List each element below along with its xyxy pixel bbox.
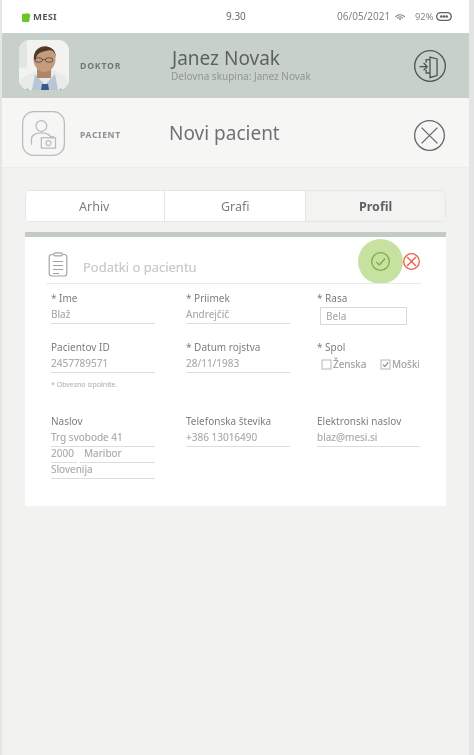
staticText: Podatki o pacientu bbox=[83, 258, 197, 276]
button[interactable]: +386 13016490 bbox=[186, 428, 290, 447]
staticText: 2457789571 bbox=[51, 356, 109, 370]
button[interactable]: Moški bbox=[381, 357, 420, 371]
staticText: PACIENT bbox=[80, 129, 121, 141]
staticText: Profil bbox=[359, 198, 393, 215]
button[interactable]: Slovenija bbox=[51, 460, 155, 479]
staticText: Pacientov ID bbox=[51, 340, 110, 354]
button[interactable]: Maribor bbox=[80, 444, 155, 463]
staticText: Trg svobode 41 bbox=[51, 430, 123, 444]
staticText: Bela bbox=[326, 309, 347, 323]
staticText: Telefonska števika bbox=[186, 414, 272, 428]
staticText: Janez Novak bbox=[172, 45, 280, 71]
staticText: Novi pacient bbox=[169, 120, 280, 146]
staticText: Grafi bbox=[221, 198, 250, 215]
button[interactable]: Preklici bbox=[403, 253, 420, 270]
staticText: Arhiv bbox=[79, 198, 110, 215]
button[interactable]: Arhiv bbox=[25, 190, 164, 222]
staticText: Maribor bbox=[84, 446, 122, 460]
button[interactable]: blaz@mesi.si bbox=[317, 428, 420, 447]
staticText: Ženska bbox=[333, 357, 367, 371]
staticText: * Priimek bbox=[186, 291, 230, 305]
button[interactable]: Trg svobode 41 bbox=[51, 428, 155, 447]
staticText: 06/05/2021 bbox=[337, 9, 391, 23]
button[interactable]: Potrdi bbox=[371, 252, 390, 271]
staticText: blaz@mesi.si bbox=[317, 430, 378, 444]
staticText: Slovenija bbox=[51, 462, 93, 476]
staticText: * Datum rojstva bbox=[186, 340, 261, 354]
staticText: Delovna skupina: Janez Novak bbox=[171, 69, 311, 83]
button[interactable]: Ženska bbox=[322, 357, 367, 371]
staticText: 9.30 bbox=[226, 9, 246, 23]
button[interactable]: Bela bbox=[320, 307, 407, 325]
staticText: * Ime bbox=[51, 291, 78, 305]
button[interactable]: Profil bbox=[306, 190, 446, 222]
button[interactable]: Andrejčič bbox=[186, 305, 290, 324]
staticText: 92% bbox=[415, 10, 434, 23]
button[interactable]: 2457789571 bbox=[51, 354, 155, 373]
staticText: Moški bbox=[392, 357, 420, 371]
button[interactable]: Blaž bbox=[51, 305, 155, 324]
staticText: 2000 bbox=[51, 446, 74, 460]
button[interactable]: 28/11/1983 bbox=[186, 354, 290, 373]
staticText: Naslov bbox=[51, 414, 83, 428]
staticText: Andrejčič bbox=[186, 307, 230, 321]
button[interactable]: Odjava bbox=[414, 50, 446, 82]
staticText: DOKTOR bbox=[80, 60, 122, 72]
staticText: Elektronski naslov bbox=[317, 414, 402, 428]
staticText: MESI bbox=[33, 10, 58, 23]
button[interactable]: Zapri bbox=[414, 120, 445, 151]
staticText: Blaž bbox=[51, 307, 71, 321]
staticText: * Spol bbox=[317, 340, 346, 354]
staticText: +386 13016490 bbox=[186, 430, 258, 444]
button[interactable]: Grafi bbox=[165, 190, 305, 222]
staticText: 28/11/1983 bbox=[186, 356, 240, 370]
staticText: * Obvezno izpolnite. bbox=[51, 380, 118, 390]
button[interactable]: 2000 bbox=[51, 444, 77, 463]
staticText: * Rasa bbox=[317, 291, 348, 305]
